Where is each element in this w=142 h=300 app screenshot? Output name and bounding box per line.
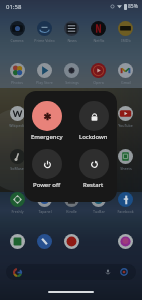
staticText: YouTube (118, 123, 133, 128)
button[interactable]: Lockdown (70, 101, 117, 141)
staticText: Kindle (66, 209, 77, 214)
staticText: News (67, 38, 77, 43)
button[interactable] (112, 234, 139, 249)
staticText: Sheets (120, 166, 132, 171)
button[interactable]: YouTube (112, 106, 139, 128)
staticText: Emergency (31, 133, 63, 141)
staticText: Prime Video (34, 38, 55, 43)
button[interactable]: Power off (24, 149, 70, 189)
button[interactable]: Google Search (6, 264, 136, 280)
button[interactable] (31, 234, 58, 249)
staticText: Netflix (93, 38, 105, 43)
button[interactable]: Netflix (85, 21, 112, 43)
button[interactable]: Prime Video (31, 21, 58, 43)
button[interactable]: Settings (58, 63, 85, 85)
staticText: Settings (65, 80, 79, 85)
button[interactable]: Facebook (112, 192, 139, 214)
staticText: IMDb (121, 38, 131, 43)
staticText: 85% (128, 3, 138, 10)
button[interactable] (58, 234, 85, 249)
staticText: Facebook (117, 209, 134, 214)
button[interactable]: Drive (85, 149, 112, 171)
staticText: Tapanel (38, 209, 52, 214)
other: Google Search (14, 269, 21, 276)
button[interactable]: Camera (3, 21, 31, 43)
staticText: Photos (93, 123, 105, 128)
button[interactable]: TuxBar (85, 192, 112, 214)
staticText: Docs (40, 166, 49, 171)
button[interactable]: Maps (31, 106, 58, 128)
staticText: Wikipedia (9, 123, 26, 128)
button[interactable]: Freshly (3, 192, 31, 214)
button[interactable]: News (58, 21, 85, 43)
staticText: TuxBar (93, 209, 105, 214)
staticText: Power off (33, 181, 61, 189)
staticText: Lockdown (79, 133, 108, 141)
button[interactable]: Slides (58, 149, 85, 171)
staticText: Freshly (11, 209, 24, 214)
staticText: Opera (93, 80, 104, 85)
staticText: Drive (94, 166, 103, 171)
staticText: 01:58 (6, 3, 22, 11)
staticText: Camera (10, 38, 24, 43)
button[interactable]: Kindle (58, 192, 85, 214)
button[interactable]: SoMuse (3, 149, 31, 171)
button[interactable]: Photos (3, 63, 31, 85)
button[interactable]: Docs (31, 149, 58, 171)
button[interactable]: Wikipedia (3, 106, 31, 128)
staticText: Photos (11, 80, 23, 85)
staticText: Play Store (36, 80, 53, 85)
button[interactable] (3, 234, 31, 249)
button[interactable]: IMDb (112, 21, 139, 43)
button[interactable]: Gmail (112, 63, 139, 85)
button[interactable]: Emergency (24, 101, 70, 141)
button[interactable]: Opera (85, 63, 112, 85)
staticText: Gmail (121, 80, 131, 85)
button[interactable]: Restart (70, 149, 117, 189)
other: Google Lens (120, 268, 128, 276)
other: Voice search (105, 269, 111, 275)
button[interactable]: Tapanel (31, 192, 58, 214)
staticText: Restart (83, 181, 104, 189)
button[interactable]: Play Store (31, 63, 58, 85)
button[interactable]: Sheets (112, 149, 139, 171)
button[interactable]: Photos (85, 106, 112, 128)
staticText: SoMuse (10, 166, 24, 171)
button[interactable]: Keep (58, 106, 85, 128)
